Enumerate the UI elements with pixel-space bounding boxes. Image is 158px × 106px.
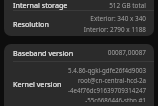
button[interactable]: Internal storage [4,0,154,10]
staticText: -55c6686446-sthp #1 [85,96,146,102]
button[interactable]: Baseband version [4,44,154,61]
staticText: 5.4.86-qgki-gdfe26f4d9003 [68,66,146,74]
staticText: Resolution [13,19,49,29]
staticText: 512 GB total [109,1,146,10]
staticText: Exterior: 340 x 340 [90,14,146,23]
staticText: 00087,00087 [107,48,146,57]
button[interactable]: Resolution [4,11,154,36]
staticText: Baseband version [13,48,74,58]
staticText: Kernel version [13,79,62,89]
staticText: Interior: 2790 x 1188 [83,25,146,34]
staticText: -4e4f76dc91639709314247 [67,86,146,94]
staticText: root@cn-central-hcd-2a [77,76,146,84]
button[interactable]: Kernel version [4,62,154,106]
staticText: Internal storage [13,0,68,10]
